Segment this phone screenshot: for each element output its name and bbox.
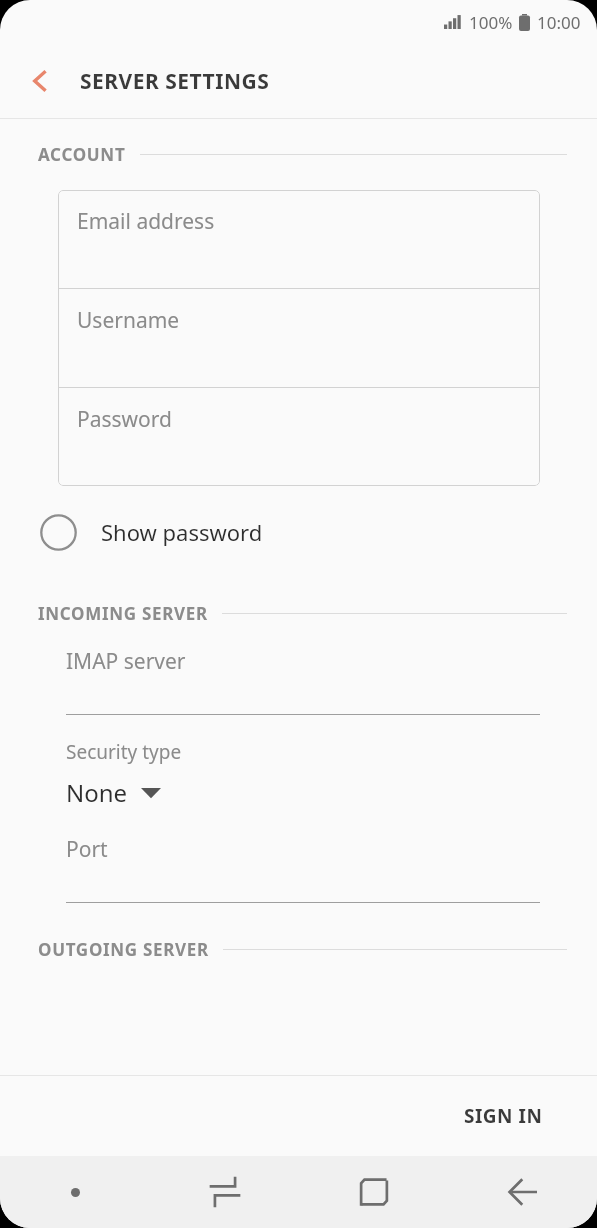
button[interactable]: Password	[58, 388, 540, 486]
button[interactable]: Back	[0, 44, 80, 118]
staticText: Show password	[101, 517, 263, 547]
staticText: SERVER SETTINGS	[80, 67, 270, 96]
button[interactable]: Port	[66, 835, 540, 903]
staticText: Username	[77, 306, 180, 335]
button[interactable]: Home	[299, 1156, 448, 1228]
staticText: None	[66, 776, 128, 809]
button[interactable]: Username	[58, 289, 540, 387]
button[interactable]: Security type	[66, 739, 182, 809]
staticText: INCOMING SERVER	[38, 602, 208, 625]
staticText: Password	[77, 405, 172, 434]
staticText: IMAP server	[66, 647, 186, 676]
staticText: Port	[66, 835, 108, 864]
button[interactable]: SIGN IN	[450, 1093, 557, 1139]
button[interactable]: Back	[448, 1156, 597, 1228]
staticText: 10:00	[537, 11, 581, 34]
staticText: SIGN IN	[464, 1103, 543, 1129]
staticText: 100%	[469, 11, 513, 34]
staticText: Security type	[66, 739, 182, 765]
button[interactable]: IMAP server	[66, 647, 540, 715]
staticText: OUTGOING SERVER	[38, 938, 209, 961]
button[interactable]: Show password	[40, 503, 597, 561]
button[interactable]: Menu indicator	[0, 1156, 150, 1228]
button[interactable]: Recent apps	[150, 1156, 299, 1228]
button[interactable]: Email address	[58, 190, 540, 288]
staticText: Email address	[77, 207, 215, 236]
staticText: ACCOUNT	[38, 143, 126, 166]
